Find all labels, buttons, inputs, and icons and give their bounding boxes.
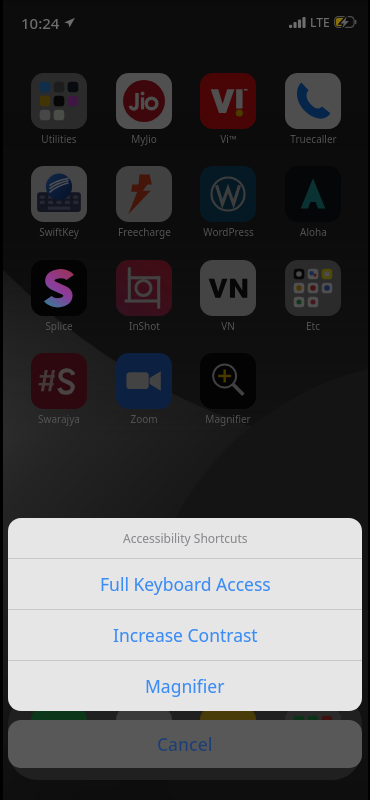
button[interactable]: Cancel [8,720,362,768]
staticText: LTE [310,14,330,30]
staticText: Increase Contrast [113,623,258,647]
button[interactable]: Swarajya [24,353,94,426]
staticText: InShot [129,319,160,333]
button[interactable]: Increase Contrast [8,610,362,660]
button[interactable]: VN [193,260,263,333]
staticText: MyJio [131,132,157,146]
button[interactable] [200,707,256,763]
button[interactable]: Aloha [278,166,348,239]
button[interactable]: Etc [278,260,348,333]
button[interactable]: SwiftKey [24,166,94,239]
button[interactable]: Utilities [24,73,94,146]
button[interactable]: Vi™ [193,73,263,146]
staticText: Truecaller [290,132,337,146]
staticText: WordPress [203,225,254,239]
staticText: Cancel [157,732,213,756]
staticText: Accessibility Shortcuts [123,530,248,546]
staticText: SwiftKey [39,225,79,239]
button[interactable]: Truecaller [278,73,348,146]
button[interactable]: InShot [109,260,179,333]
button[interactable]: Magnifier [8,661,362,711]
button[interactable]: Zoom [109,353,179,426]
button[interactable]: WordPress [193,166,263,239]
button[interactable]: Freecharge [109,166,179,239]
staticText: 10:24 [21,13,60,33]
button[interactable]: Full Keyboard Access [8,559,362,609]
button[interactable] [285,707,341,763]
staticText: Vi™ [220,132,237,146]
staticText: Etc [306,319,320,333]
staticText: Splice [45,319,73,333]
button[interactable]: Splice [24,260,94,333]
staticText: VN [221,319,235,333]
staticText: Magnifier [145,674,225,698]
staticText: Zoom [130,412,158,426]
staticText: Swarajya [38,412,80,426]
staticText: Utilities [41,132,77,146]
button[interactable]: Magnifier [193,353,263,426]
button[interactable] [31,707,87,763]
button[interactable]: MyJio [109,73,179,146]
button[interactable] [116,707,172,763]
staticText: Freecharge [118,225,171,239]
staticText: Magnifier [205,412,251,426]
staticText: Aloha [300,225,327,239]
staticText: Full Keyboard Access [100,572,271,596]
